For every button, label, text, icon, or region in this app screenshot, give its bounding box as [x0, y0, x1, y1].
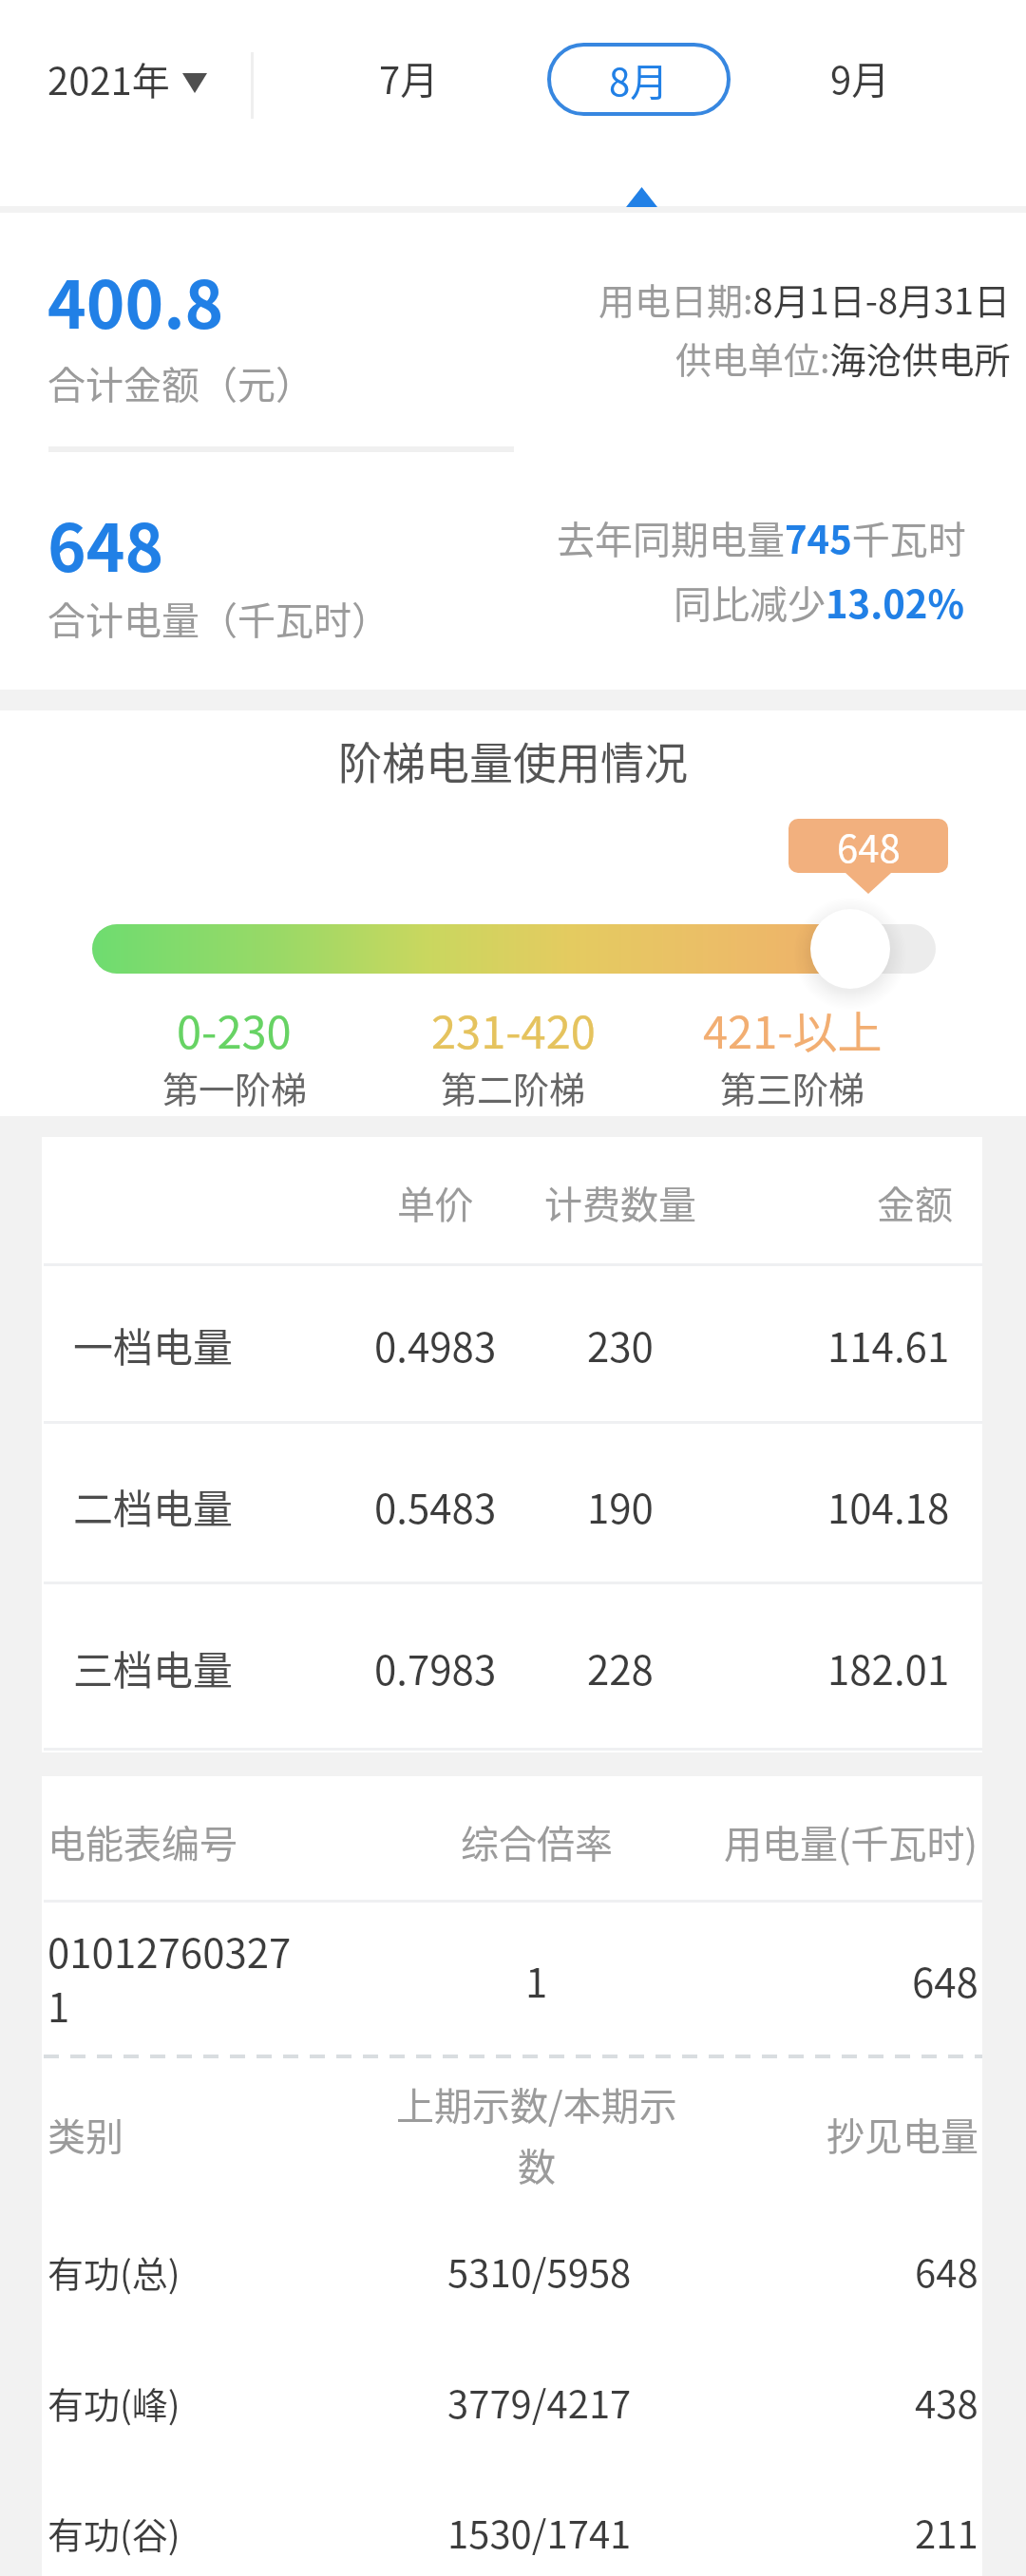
staticText: 合计金额（元）	[47, 355, 313, 410]
staticText: 第一阶梯	[162, 1061, 308, 1113]
staticText: 金额	[877, 1175, 953, 1230]
button[interactable]	[38, 33, 223, 123]
staticText: 182.01	[827, 1638, 950, 1696]
staticText: 438	[915, 2375, 978, 2430]
staticText: 190	[587, 1477, 654, 1535]
staticText: 7月	[379, 50, 439, 105]
staticText: 抄见电量	[826, 2107, 978, 2162]
staticText: 三档电量	[73, 1638, 234, 1696]
staticText: 211	[915, 2505, 978, 2560]
staticText: 421-以上	[703, 996, 883, 1061]
staticText: 有功(总)	[47, 2245, 180, 2298]
staticText: 阶梯电量使用情况	[338, 729, 688, 792]
staticText: 二档电量	[73, 1477, 234, 1535]
staticText: 一档电量	[73, 1316, 234, 1373]
staticText: 有功(谷)	[47, 2507, 180, 2559]
staticText: 231-420	[431, 996, 596, 1061]
staticText: 合计电量（千瓦时）	[47, 591, 389, 646]
staticText: 供电单位:海沧供电所	[675, 331, 1011, 384]
staticText: 上期示数/本期示	[396, 2076, 677, 2131]
staticText: 0.4983	[374, 1316, 497, 1373]
staticText: 2021年	[47, 51, 170, 106]
staticText: 计费数量	[544, 1175, 696, 1230]
staticText: 5310/5958	[447, 2244, 632, 2299]
staticText: 电能表编号	[47, 1814, 237, 1869]
staticText: 1	[525, 1951, 548, 2009]
staticText: 数	[518, 2137, 556, 2192]
staticText: 类别	[47, 2107, 123, 2162]
staticText: 第二阶梯	[441, 1061, 586, 1113]
staticText: 114.61	[827, 1316, 950, 1373]
staticText: 1	[47, 1976, 70, 2034]
button[interactable]: 7月	[323, 28, 494, 127]
staticText: 648	[837, 819, 901, 873]
staticText: 去年同期电量745千瓦时	[557, 510, 966, 565]
staticText: 01012760327	[47, 1922, 292, 1979]
staticText: 第三阶梯	[720, 1061, 865, 1113]
staticText: 同比减少13.02%	[674, 575, 964, 630]
staticText: 648	[912, 1951, 978, 2009]
staticText: 9月	[830, 50, 890, 105]
button[interactable]	[92, 924, 936, 974]
staticText: 用电量(千瓦时)	[724, 1814, 978, 1869]
staticText: 单价	[397, 1175, 473, 1230]
button[interactable]: 8月	[547, 43, 731, 116]
staticText: 230	[587, 1316, 654, 1373]
staticText: 400.8	[47, 253, 224, 348]
staticText: 1530/1741	[447, 2505, 632, 2560]
staticText: 648	[915, 2244, 978, 2299]
staticText: 0-230	[177, 996, 292, 1061]
staticText: 用电日期:8月1日-8月31日	[598, 273, 1011, 325]
button[interactable]: 9月	[774, 28, 945, 127]
staticText: 综合倍率	[461, 1814, 613, 1869]
staticText: 228	[587, 1638, 654, 1696]
staticText: 0.5483	[374, 1477, 497, 1535]
staticText: 3779/4217	[447, 2375, 632, 2430]
staticText: 有功(峰)	[47, 2377, 180, 2429]
staticText: 8月	[609, 52, 669, 107]
staticText: 104.18	[827, 1477, 950, 1535]
staticText: 648	[47, 496, 164, 591]
staticText: 0.7983	[374, 1638, 497, 1696]
